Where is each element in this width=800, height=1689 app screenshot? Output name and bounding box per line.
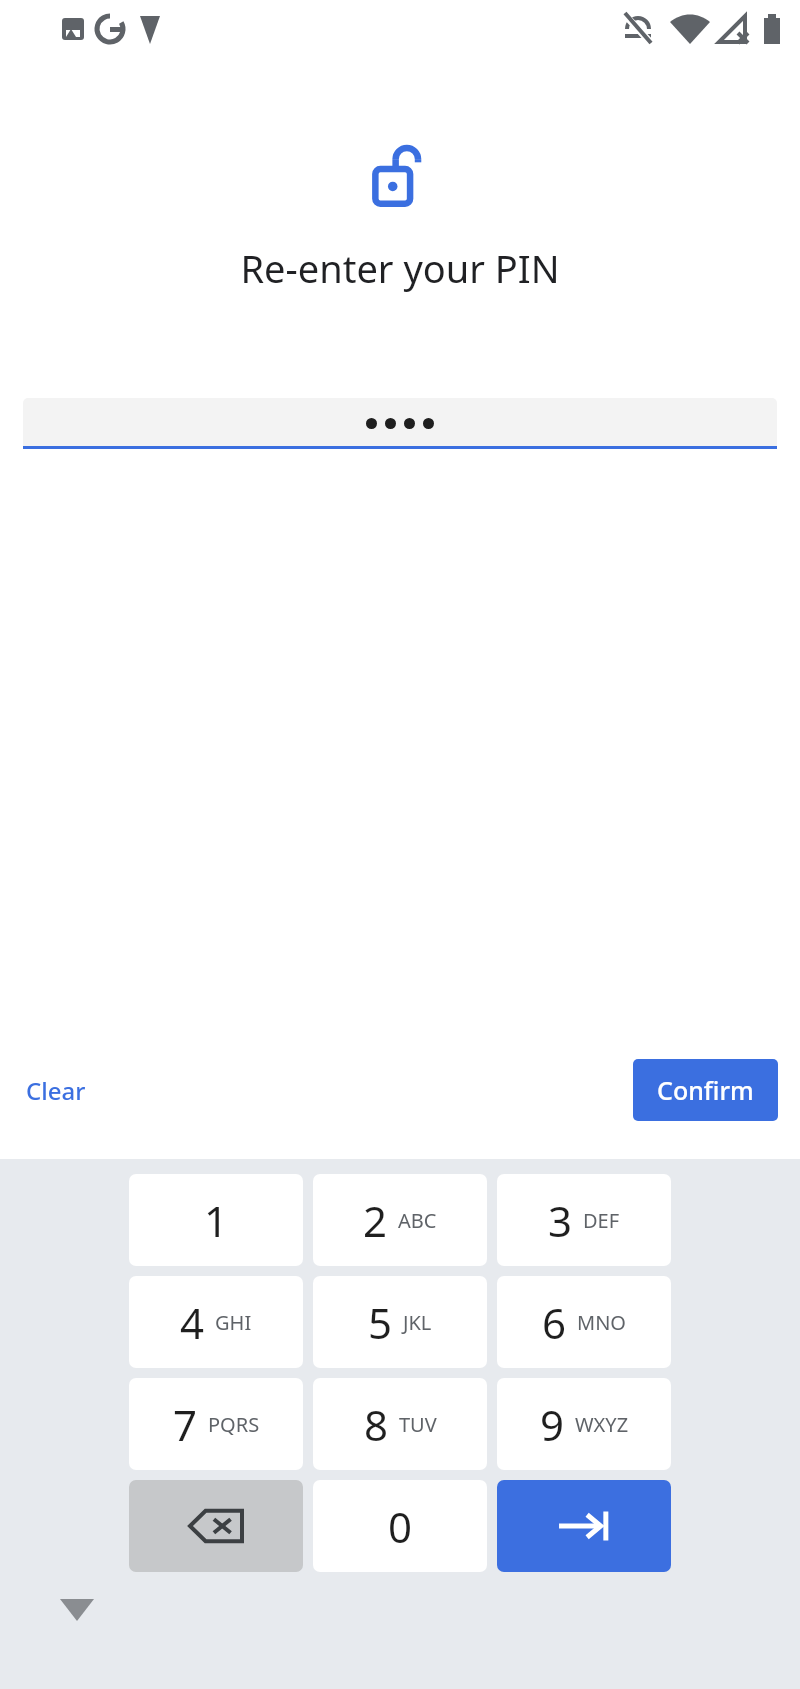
button[interactable]: Backspace (129, 1480, 303, 1572)
staticText: WXYZ (575, 1411, 629, 1438)
button[interactable]: Clear (22, 1068, 90, 1113)
staticText: 8 (364, 1396, 389, 1453)
staticText: 1 (204, 1192, 229, 1249)
staticText: 7 (173, 1396, 198, 1453)
button[interactable]: Next (497, 1480, 671, 1572)
staticText: Confirm (657, 1073, 754, 1107)
staticText: 2 (363, 1192, 388, 1249)
button[interactable]: 8 (313, 1378, 487, 1470)
staticText: Re-enter your PIN (0, 242, 800, 294)
other: Hide keyboard (60, 1599, 94, 1621)
staticText: 6 (542, 1294, 567, 1351)
button[interactable]: 9 (497, 1378, 671, 1470)
button[interactable]: 6 (497, 1276, 671, 1368)
staticText: MNO (577, 1309, 626, 1336)
button[interactable]: 4 (129, 1276, 303, 1368)
button[interactable]: 7 (129, 1378, 303, 1470)
staticText: 4 (180, 1294, 205, 1351)
button[interactable]: 2 (313, 1174, 487, 1266)
staticText: ABC (398, 1207, 437, 1234)
button[interactable]: 0 (313, 1480, 487, 1572)
other: Unlocked (372, 143, 428, 205)
button[interactable] (23, 398, 777, 449)
staticText: JKL (403, 1309, 432, 1336)
button[interactable]: 5 (313, 1276, 487, 1368)
staticText: Clear (26, 1074, 86, 1107)
staticText: DEF (583, 1207, 620, 1234)
staticText: 3 (548, 1192, 573, 1249)
staticText: PQRS (208, 1411, 260, 1438)
staticText: GHI (215, 1309, 252, 1336)
button[interactable]: Confirm (633, 1059, 778, 1121)
button[interactable]: 3 (497, 1174, 671, 1266)
staticText: 0 (388, 1498, 413, 1555)
staticText: TUV (399, 1411, 437, 1438)
button[interactable]: 1 (129, 1174, 303, 1266)
staticText: 5 (368, 1294, 393, 1351)
staticText: 9 (540, 1396, 565, 1453)
